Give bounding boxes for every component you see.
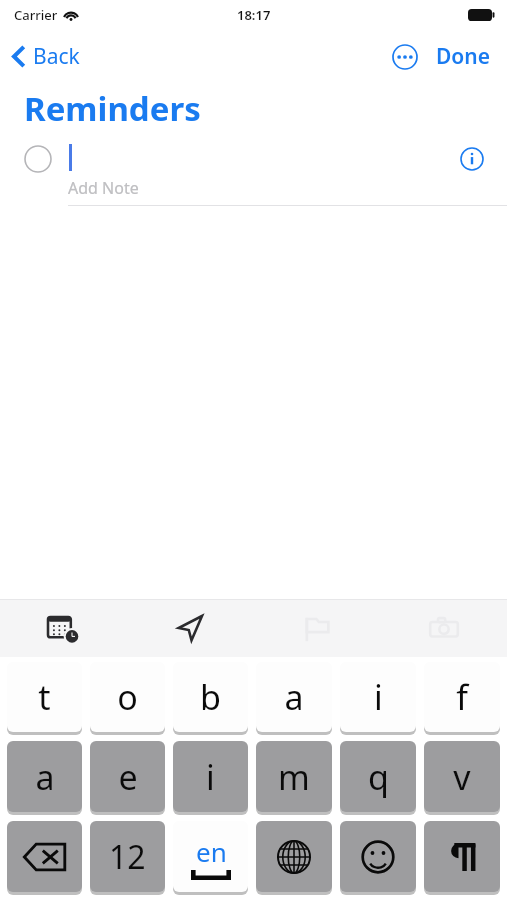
button[interactable]: m — [256, 741, 332, 812]
staticText: 12 — [109, 835, 146, 879]
other: Emoji — [340, 821, 416, 895]
button[interactable]: More options — [386, 38, 424, 76]
staticText: m — [278, 754, 310, 800]
staticText: b — [200, 674, 221, 720]
staticText: Carrier — [14, 6, 58, 24]
staticText: i — [374, 674, 383, 720]
button[interactable] — [7, 821, 82, 892]
staticText: f — [456, 674, 468, 720]
button[interactable]: Remind me at a location — [126, 599, 253, 657]
staticText: Reminders — [24, 86, 201, 131]
staticText: q — [368, 754, 389, 800]
staticText: Back — [33, 42, 80, 71]
staticText: 18:17 — [237, 6, 271, 24]
button[interactable]: Remind me on a day — [0, 599, 126, 657]
button[interactable]: a — [256, 662, 332, 732]
other: Numbers — [90, 821, 165, 895]
button[interactable]: f — [424, 662, 500, 732]
button[interactable]: en — [173, 821, 248, 892]
button[interactable]: a — [7, 741, 82, 812]
button[interactable] — [424, 821, 500, 892]
staticText: e — [118, 754, 138, 800]
staticText: i — [206, 754, 215, 800]
staticText: en — [196, 834, 227, 869]
button[interactable]: i — [340, 662, 416, 732]
button[interactable]: q — [340, 741, 416, 812]
staticText: Done — [436, 42, 491, 71]
button[interactable]: e — [90, 741, 165, 812]
button[interactable]: Back — [0, 36, 90, 77]
button[interactable]: Add Note — [0, 134, 507, 206]
staticText: a — [35, 754, 55, 800]
staticText: t — [38, 674, 51, 720]
staticText: o — [117, 674, 138, 720]
button[interactable] — [340, 821, 416, 892]
button[interactable]: i — [173, 741, 248, 812]
button[interactable]: Details — [457, 144, 487, 174]
button[interactable]: b — [173, 662, 248, 732]
staticText: Add Note — [68, 177, 139, 199]
other: Backspace — [7, 821, 82, 895]
staticText: v — [453, 754, 471, 800]
button[interactable]: 12 — [90, 821, 165, 892]
button[interactable]: o — [90, 662, 165, 732]
other: Next keyboard — [256, 821, 332, 895]
button[interactable]: Done — [432, 36, 495, 77]
button[interactable]: t — [7, 662, 82, 732]
other: Language English — [173, 821, 248, 895]
staticText: a — [284, 674, 304, 720]
other: Paragraph — [424, 821, 500, 895]
button[interactable] — [256, 821, 332, 892]
button[interactable]: v — [424, 741, 500, 812]
